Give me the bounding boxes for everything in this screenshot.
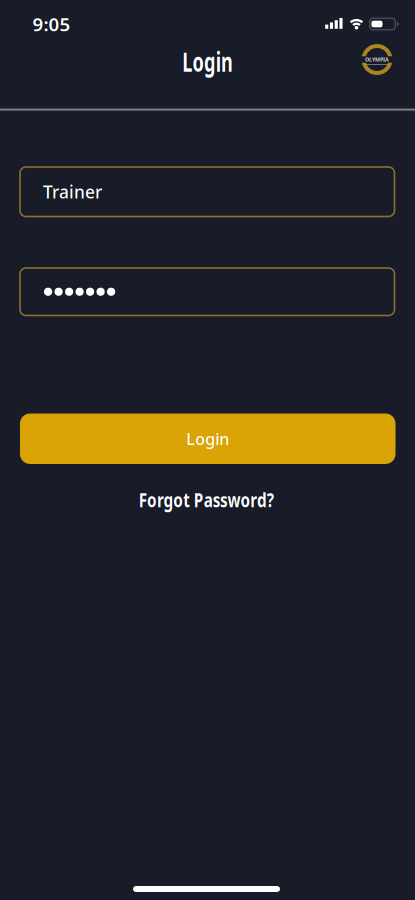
button[interactable]: Forgot Password? — [124, 488, 289, 512]
button[interactable]: OLYMPIA — [358, 42, 396, 76]
button[interactable] — [20, 268, 394, 315]
staticText: Login — [186, 428, 229, 449]
staticText: Login — [170, 44, 244, 79]
staticText: Trainer — [43, 180, 102, 203]
staticText: 9:05 — [32, 12, 70, 36]
button[interactable]: Login — [20, 413, 395, 464]
button[interactable]: Trainer — [20, 167, 394, 216]
staticText: Forgot Password? — [124, 488, 289, 512]
staticText: OLYMPIA — [365, 56, 389, 63]
